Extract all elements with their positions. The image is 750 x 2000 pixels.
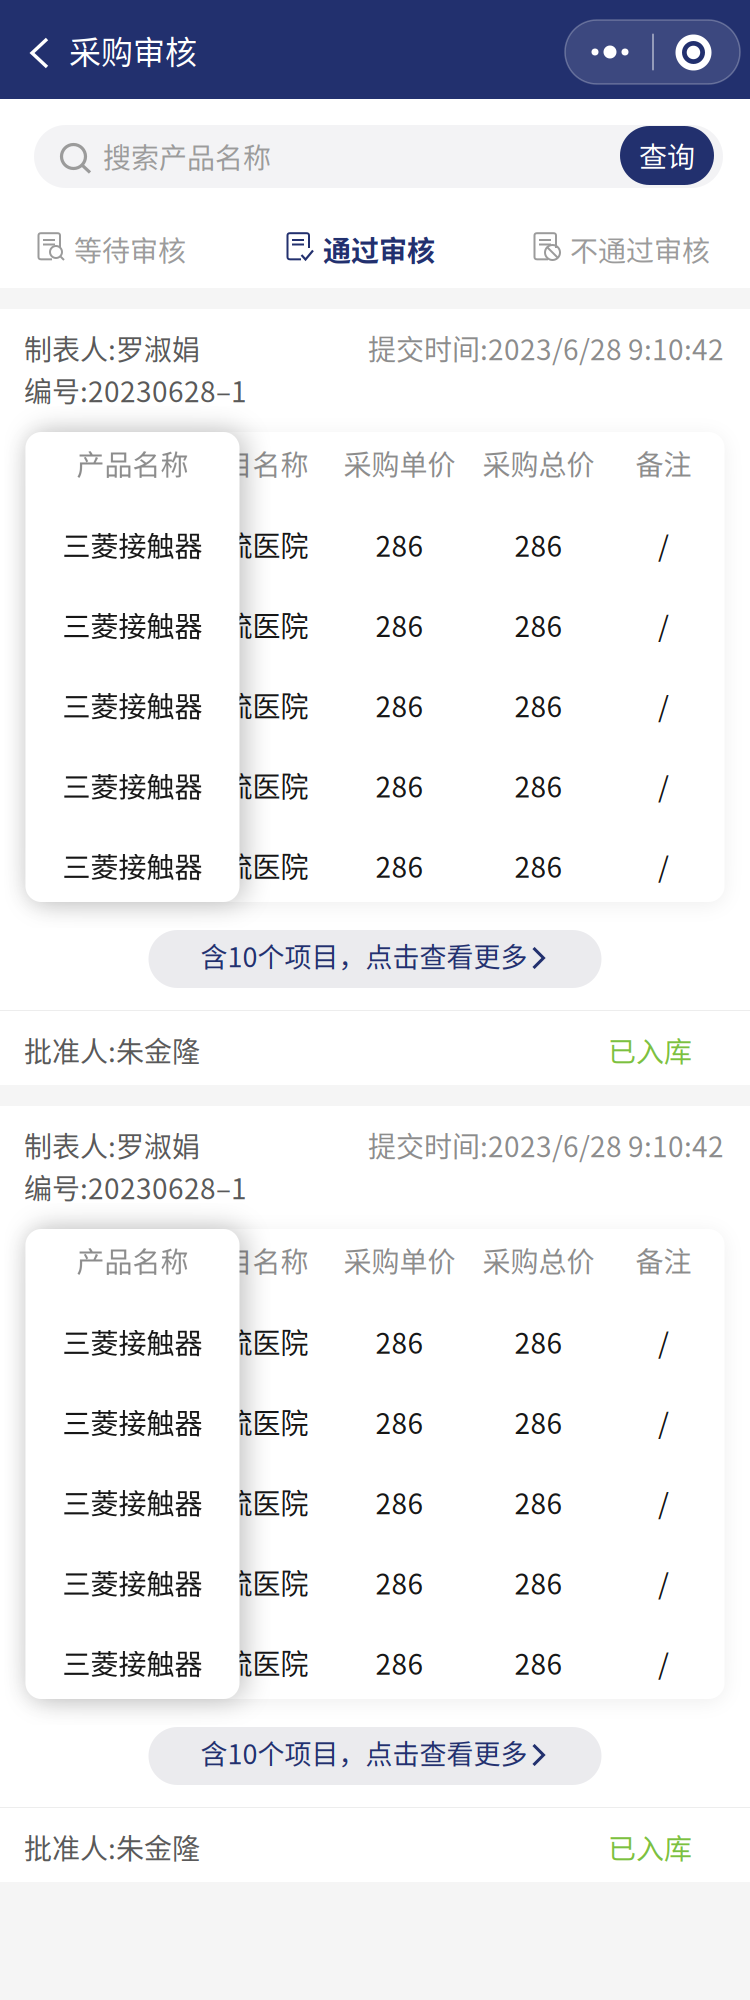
staticText: 已入库 — [608, 1030, 692, 1070]
staticText: 制表人:罗淑娟 — [24, 1125, 200, 1165]
button[interactable]: 等待审核 — [36, 200, 196, 288]
staticText: / — [658, 845, 669, 886]
staticText: 提交时间:2023/6/28 9:10:42 — [368, 1125, 724, 1165]
staticText: 已入库 — [608, 1827, 692, 1867]
staticText: 交流医院 — [196, 685, 308, 725]
staticText: / — [658, 1642, 669, 1683]
staticText: 286 — [375, 1402, 423, 1442]
staticText: 采购总价 — [482, 443, 594, 483]
staticText: 含10个项目，点击查看更多 — [200, 1733, 527, 1772]
staticText: 产品名称 — [76, 1240, 188, 1280]
staticText: 制表人:罗淑娟 — [24, 328, 200, 368]
staticText: 286 — [514, 524, 562, 565]
staticText: 三菱接触器 — [62, 1562, 202, 1603]
staticText: 286 — [514, 1642, 562, 1683]
button[interactable]: 含10个项目，点击查看更多 — [148, 1727, 601, 1785]
staticText: 交流医院 — [196, 1482, 308, 1522]
staticText: 286 — [514, 605, 562, 645]
staticText: 286 — [375, 1321, 423, 1362]
staticText: 编号:20230628–1 — [24, 1167, 247, 1207]
staticText: 交流医院 — [196, 765, 308, 806]
staticText: 产品名称 — [76, 443, 188, 483]
staticText: 三菱接触器 — [62, 524, 202, 565]
staticText: 采购单价 — [343, 443, 455, 483]
staticText: 项目名称 — [196, 1240, 308, 1280]
staticText: 三菱接触器 — [62, 1402, 202, 1442]
staticText: 三菱接触器 — [62, 845, 202, 886]
staticText: 286 — [514, 1562, 562, 1603]
staticText: 批准人:朱金隆 — [24, 1030, 200, 1070]
staticText: 286 — [514, 685, 562, 725]
staticText: / — [658, 524, 669, 565]
staticText: 采购总价 — [482, 1240, 594, 1280]
staticText: 286 — [375, 765, 423, 806]
staticText: 286 — [375, 1482, 423, 1522]
staticText: 交流医院 — [196, 845, 308, 886]
staticText: 查询 — [639, 135, 695, 176]
staticText: / — [658, 605, 669, 645]
staticText: 三菱接触器 — [62, 605, 202, 645]
staticText: 项目名称 — [196, 443, 308, 483]
staticText: 286 — [514, 765, 562, 806]
staticText: 备注 — [635, 1240, 691, 1280]
staticText: 等待审核 — [74, 229, 186, 269]
staticText: 编号:20230628–1 — [24, 370, 247, 410]
staticText: 286 — [375, 685, 423, 725]
button[interactable]: 通过审核 — [285, 200, 450, 288]
staticText: 搜索产品名称 — [103, 136, 271, 176]
staticText: 286 — [514, 1321, 562, 1362]
staticText: 交流医院 — [196, 605, 308, 645]
staticText: 286 — [375, 524, 423, 565]
staticText: 批准人:朱金隆 — [24, 1827, 200, 1867]
staticText: / — [658, 1562, 669, 1603]
staticText: 286 — [514, 1482, 562, 1522]
staticText: 交流医院 — [196, 1321, 308, 1362]
staticText: 交流医院 — [196, 1402, 308, 1442]
staticText: 三菱接触器 — [62, 1482, 202, 1522]
staticText: 286 — [375, 845, 423, 886]
button[interactable]: 返回 — [0, 17, 217, 89]
staticText: 采购单价 — [343, 1240, 455, 1280]
staticText: 采购审核 — [69, 27, 197, 73]
staticText: 286 — [514, 1402, 562, 1442]
staticText: 286 — [375, 1642, 423, 1683]
staticText: / — [658, 1402, 669, 1442]
button[interactable]: 不通过审核 — [532, 200, 722, 288]
staticText: 提交时间:2023/6/28 9:10:42 — [368, 328, 724, 368]
staticText: 交流医院 — [196, 1562, 308, 1603]
staticText: 三菱接触器 — [62, 685, 202, 725]
staticText: / — [658, 1321, 669, 1362]
staticText: 三菱接触器 — [62, 765, 202, 806]
staticText: 含10个项目，点击查看更多 — [200, 936, 527, 975]
staticText: / — [658, 1482, 669, 1522]
staticText: 交流医院 — [196, 524, 308, 565]
staticText: 交流医院 — [196, 1642, 308, 1683]
staticText: 通过审核 — [323, 229, 435, 269]
staticText: 286 — [375, 605, 423, 645]
staticText: 三菱接触器 — [62, 1321, 202, 1362]
staticText: 备注 — [635, 443, 691, 483]
button[interactable]: 查询 — [620, 126, 714, 185]
staticText: / — [658, 765, 669, 806]
staticText: 三菱接触器 — [62, 1642, 202, 1683]
staticText: 不通过审核 — [570, 229, 710, 269]
button[interactable]: 更多菜单 — [565, 20, 740, 84]
staticText: 286 — [375, 1562, 423, 1603]
staticText: / — [658, 685, 669, 725]
button[interactable]: 含10个项目，点击查看更多 — [148, 930, 601, 988]
staticText: 286 — [514, 845, 562, 886]
